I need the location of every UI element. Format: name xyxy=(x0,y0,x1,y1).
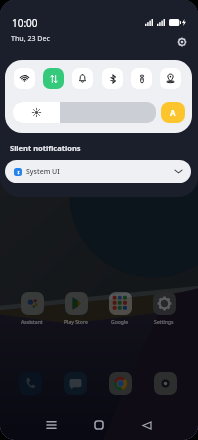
button[interactable]: Camera xyxy=(154,372,177,395)
button[interactable]: Back xyxy=(132,410,162,440)
button[interactable]: System UI xyxy=(5,160,191,183)
staticText: Thu, 23 Dec xyxy=(11,34,50,44)
staticText: Assistant xyxy=(21,319,43,326)
button[interactable]: A xyxy=(161,102,185,123)
button[interactable]: Play Store xyxy=(63,292,89,326)
button[interactable]: Google xyxy=(107,292,133,326)
button[interactable]: Chrome xyxy=(109,372,132,395)
button[interactable]: Wi-Fi xyxy=(14,68,35,89)
button[interactable]: Location xyxy=(160,68,181,89)
staticText: Play Store xyxy=(64,319,88,326)
staticText: Google xyxy=(111,319,129,326)
button[interactable]: Messages xyxy=(64,372,87,395)
button[interactable]: Mobile data xyxy=(43,68,64,89)
button[interactable]: Brightness xyxy=(13,102,156,123)
button[interactable]: Assistant xyxy=(19,292,45,326)
button[interactable]: Settings xyxy=(173,33,190,50)
staticText: Silent notifications xyxy=(10,143,81,153)
button[interactable]: Recents xyxy=(36,410,66,440)
button[interactable]: Home xyxy=(84,410,114,440)
staticText: 10:00 xyxy=(12,16,38,30)
staticText: A xyxy=(170,107,176,118)
button[interactable]: Bluetooth xyxy=(102,68,123,89)
button[interactable]: Phone xyxy=(19,372,42,395)
staticText: System UI xyxy=(26,167,60,177)
staticText: Settings xyxy=(154,319,174,326)
button[interactable]: Settings xyxy=(151,292,177,326)
button[interactable]: Flashlight xyxy=(131,68,152,89)
button[interactable]: Do not disturb xyxy=(72,68,93,89)
